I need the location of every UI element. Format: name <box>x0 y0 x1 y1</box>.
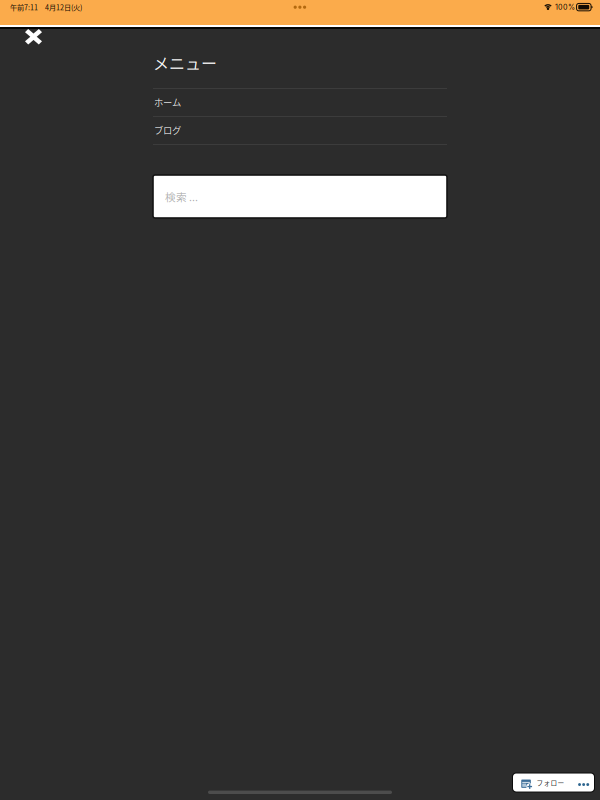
button[interactable]: 検索 ... <box>153 175 447 218</box>
staticText: メニュー <box>153 51 217 74</box>
staticText: ブログ <box>154 123 181 137</box>
button[interactable]: ブログ <box>153 116 447 144</box>
button[interactable]: Close menu <box>18 22 49 52</box>
button[interactable]: ホーム <box>153 88 447 116</box>
button[interactable]: フォロー <box>512 772 595 792</box>
staticText: 午前7:11 4月12日(火) <box>10 2 82 12</box>
staticText: フォロー <box>536 778 564 787</box>
staticText: ホーム <box>154 95 181 109</box>
staticText: 100% <box>555 3 575 11</box>
staticText: 検索 ... <box>165 189 198 204</box>
